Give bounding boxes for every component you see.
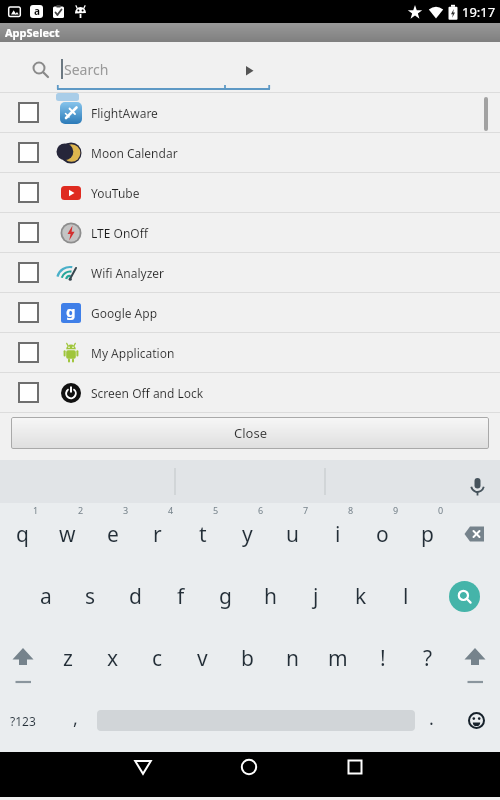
staticText: 8 xyxy=(348,504,354,516)
staticText: z xyxy=(63,644,73,673)
staticText: g xyxy=(66,301,76,321)
button[interactable] xyxy=(18,382,39,403)
button[interactable]: LTE OnOff xyxy=(0,213,500,252)
staticText: w xyxy=(59,520,76,549)
button[interactable]: h xyxy=(248,565,293,627)
button[interactable]: l xyxy=(383,565,428,627)
button[interactable]: ! xyxy=(360,627,405,689)
button[interactable]: FlightAware xyxy=(0,93,500,132)
button[interactable]: b xyxy=(225,627,270,689)
button[interactable]: c xyxy=(135,627,180,689)
button[interactable]: g xyxy=(203,565,248,627)
button[interactable]: ? xyxy=(405,627,450,689)
staticText: YouTube xyxy=(91,185,140,201)
staticText: m xyxy=(328,644,348,673)
button[interactable]: a xyxy=(23,565,68,627)
button[interactable]: 7 xyxy=(270,503,315,565)
button[interactable]: Search xyxy=(0,42,500,92)
button[interactable]: 2 xyxy=(45,503,90,565)
button[interactable]: j xyxy=(293,565,338,627)
staticText: v xyxy=(197,644,208,673)
staticText: a xyxy=(34,4,40,17)
button[interactable]: v xyxy=(180,627,225,689)
button[interactable] xyxy=(18,102,39,123)
button[interactable]: s xyxy=(68,565,113,627)
button[interactable]: 1 xyxy=(0,503,45,565)
staticText: g xyxy=(219,582,232,611)
button[interactable] xyxy=(18,302,39,323)
button[interactable]: Moon Calendar xyxy=(0,133,500,172)
button[interactable]: . xyxy=(415,689,447,752)
staticText: Moon Calendar xyxy=(91,145,178,161)
button[interactable]: , xyxy=(53,689,97,752)
staticText: i xyxy=(335,520,341,549)
staticText: c xyxy=(152,644,163,673)
staticText: t xyxy=(199,520,207,549)
staticText: a xyxy=(40,582,52,611)
button[interactable]: d xyxy=(113,565,158,627)
button[interactable]: n xyxy=(270,627,315,689)
staticText: My Application xyxy=(91,345,175,361)
button[interactable]: 5 xyxy=(180,503,225,565)
button[interactable] xyxy=(18,222,39,243)
staticText: q xyxy=(16,520,29,549)
staticText: , xyxy=(73,706,78,731)
button[interactable] xyxy=(18,182,39,203)
button[interactable] xyxy=(18,142,39,163)
button[interactable] xyxy=(133,752,153,797)
button[interactable]: 0 xyxy=(405,503,450,565)
button[interactable]: ?123 xyxy=(0,689,45,752)
button[interactable]: My Application xyxy=(0,333,500,372)
staticText: k xyxy=(355,582,367,611)
staticText: 2 xyxy=(78,504,84,516)
staticText: Google App xyxy=(91,305,158,321)
button[interactable]: YouTube xyxy=(0,173,500,212)
button[interactable]: 3 xyxy=(90,503,135,565)
staticText: ?123 xyxy=(10,713,36,729)
button[interactable]: 9 xyxy=(360,503,405,565)
button[interactable] xyxy=(18,342,39,363)
staticText: 1 xyxy=(33,504,39,516)
button[interactable] xyxy=(97,689,415,752)
button[interactable]: g xyxy=(0,293,500,332)
button[interactable] xyxy=(428,565,500,627)
staticText: u xyxy=(286,520,299,549)
button[interactable]: Screen Off and Lock xyxy=(0,373,500,412)
button[interactable]: f xyxy=(158,565,203,627)
button[interactable] xyxy=(447,689,500,752)
button[interactable]: m xyxy=(315,627,360,689)
staticText: e xyxy=(107,520,119,549)
staticText: 0 xyxy=(438,504,444,516)
button[interactable] xyxy=(450,503,500,565)
staticText: p xyxy=(421,520,434,549)
button[interactable]: x xyxy=(90,627,135,689)
button[interactable]: 6 xyxy=(225,503,270,565)
staticText: r xyxy=(153,520,162,549)
staticText: 19:17 xyxy=(462,3,496,21)
button[interactable] xyxy=(239,752,259,797)
button[interactable]: 8 xyxy=(315,503,360,565)
button[interactable] xyxy=(345,752,365,797)
button[interactable] xyxy=(18,262,39,283)
staticText: y xyxy=(242,520,253,549)
button[interactable]: Close xyxy=(11,417,489,449)
staticText: 3 xyxy=(123,504,129,516)
button[interactable] xyxy=(0,627,45,689)
staticText: j xyxy=(313,582,319,611)
staticText: 4 xyxy=(168,504,174,516)
staticText: x xyxy=(107,644,119,673)
staticText: s xyxy=(85,582,96,611)
staticText: 5 xyxy=(213,504,219,516)
staticText: ! xyxy=(380,644,386,673)
button[interactable]: k xyxy=(338,565,383,627)
button[interactable]: z xyxy=(45,627,90,689)
staticText: 6 xyxy=(258,504,264,516)
staticText: o xyxy=(376,520,389,549)
staticText: FlightAware xyxy=(91,105,158,121)
staticText: 7 xyxy=(303,504,309,516)
staticText: Close xyxy=(234,424,267,442)
button[interactable]: 4 xyxy=(135,503,180,565)
button[interactable]: Wifi Analyzer xyxy=(0,253,500,292)
staticText: h xyxy=(264,582,277,611)
button[interactable] xyxy=(450,627,500,689)
